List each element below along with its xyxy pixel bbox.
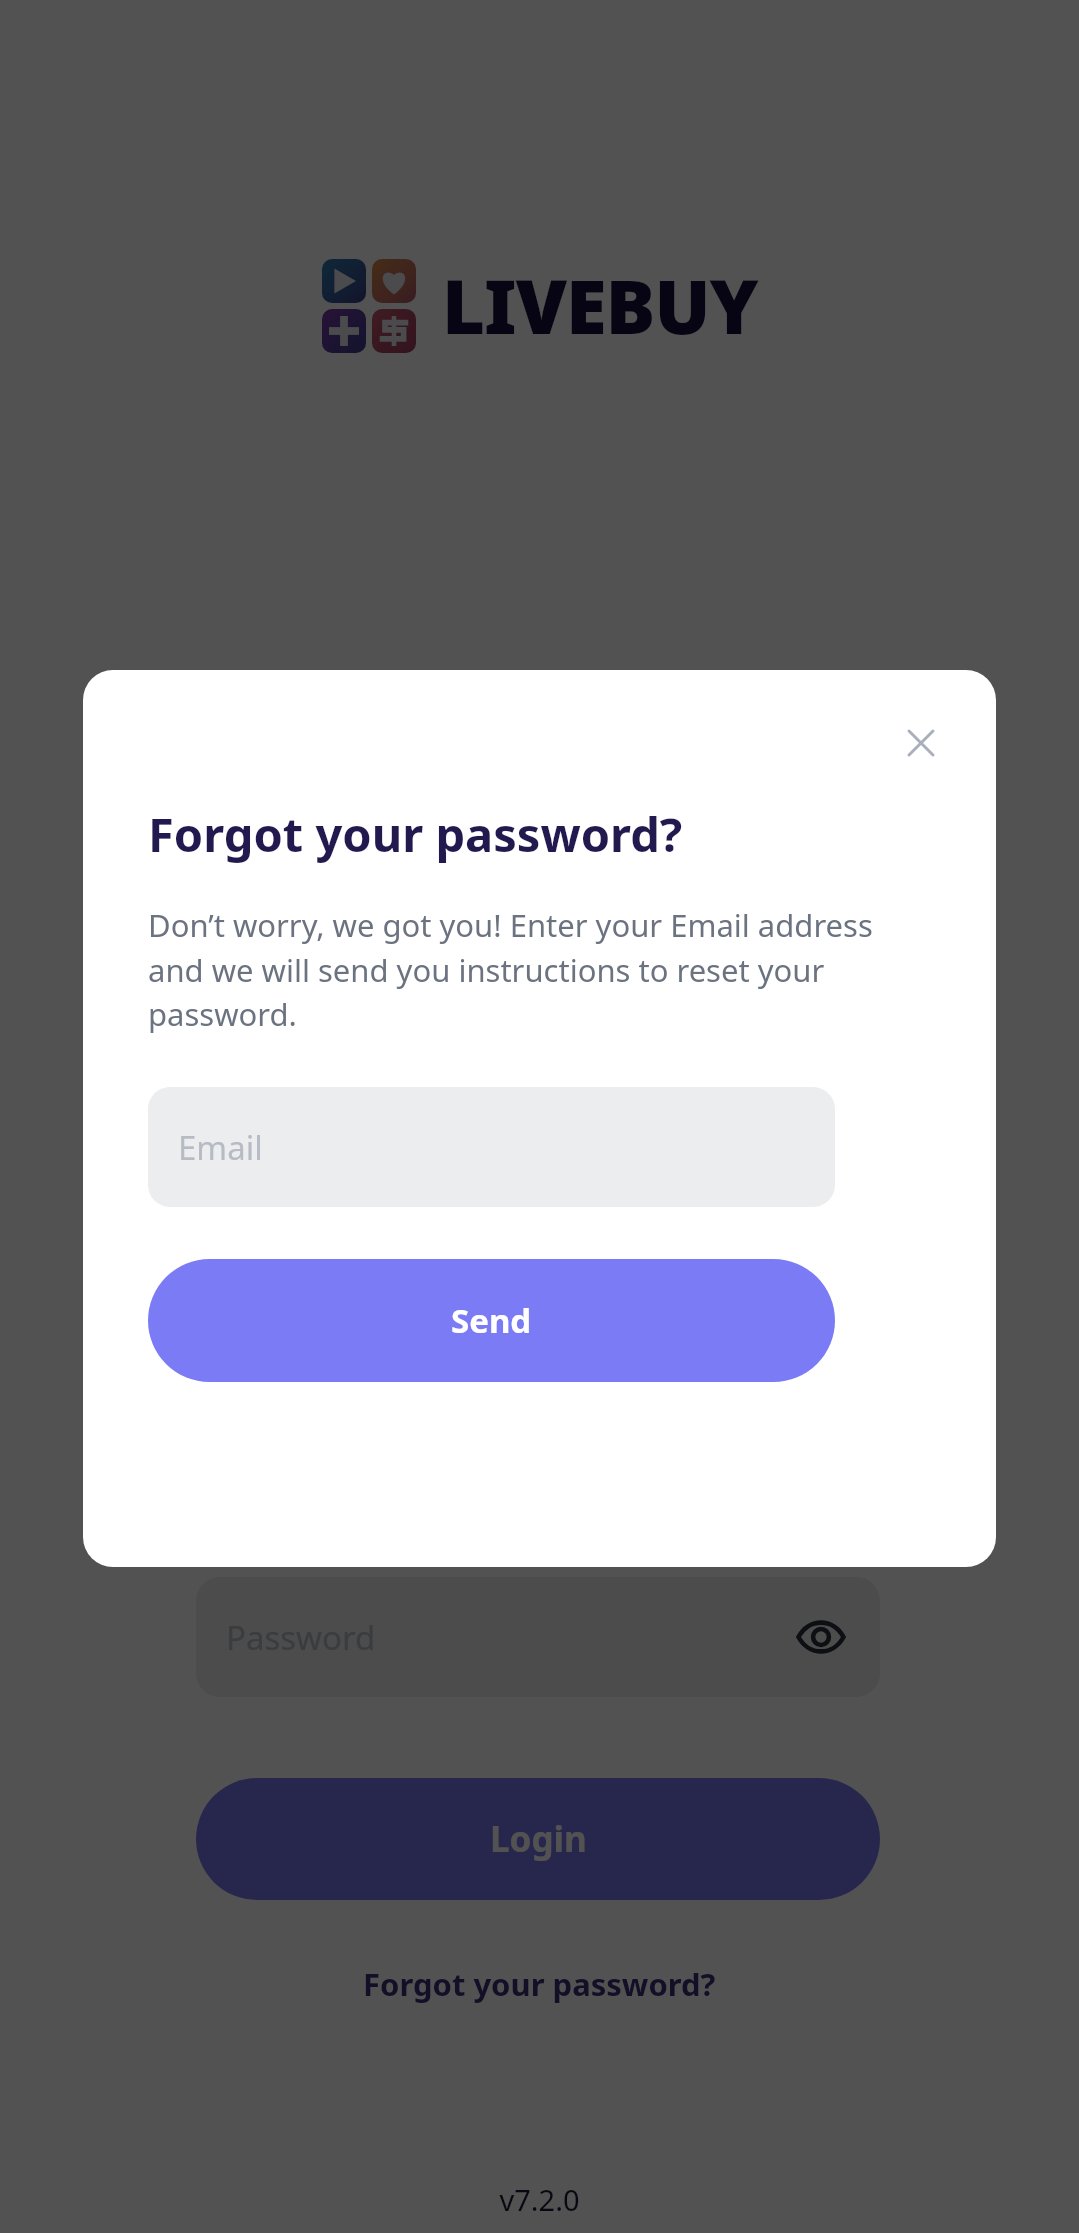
staticText: v7.2.0: [499, 2180, 580, 2219]
staticText: LIVEBUY: [442, 255, 758, 356]
staticText: Login: [490, 1815, 587, 1863]
staticText: Send: [451, 1298, 532, 1343]
staticText: Forgot your password?: [148, 802, 683, 866]
button[interactable]: [196, 1380, 880, 1500]
button[interactable]: Forgot your password?: [353, 1955, 726, 2013]
button[interactable]: Close: [890, 712, 952, 774]
button[interactable]: Email: [148, 1087, 835, 1207]
staticText: Forgot your password?: [363, 1963, 716, 2005]
staticText: Email: [178, 1125, 263, 1170]
button[interactable]: Show password: [786, 1602, 856, 1672]
button[interactable]: Login: [196, 1778, 880, 1900]
staticText: Password: [226, 1615, 376, 1660]
button[interactable]: Password: [196, 1577, 880, 1697]
staticText: Don’t worry, we got you! Enter your Emai…: [148, 904, 931, 1035]
button[interactable]: Send: [148, 1259, 835, 1382]
